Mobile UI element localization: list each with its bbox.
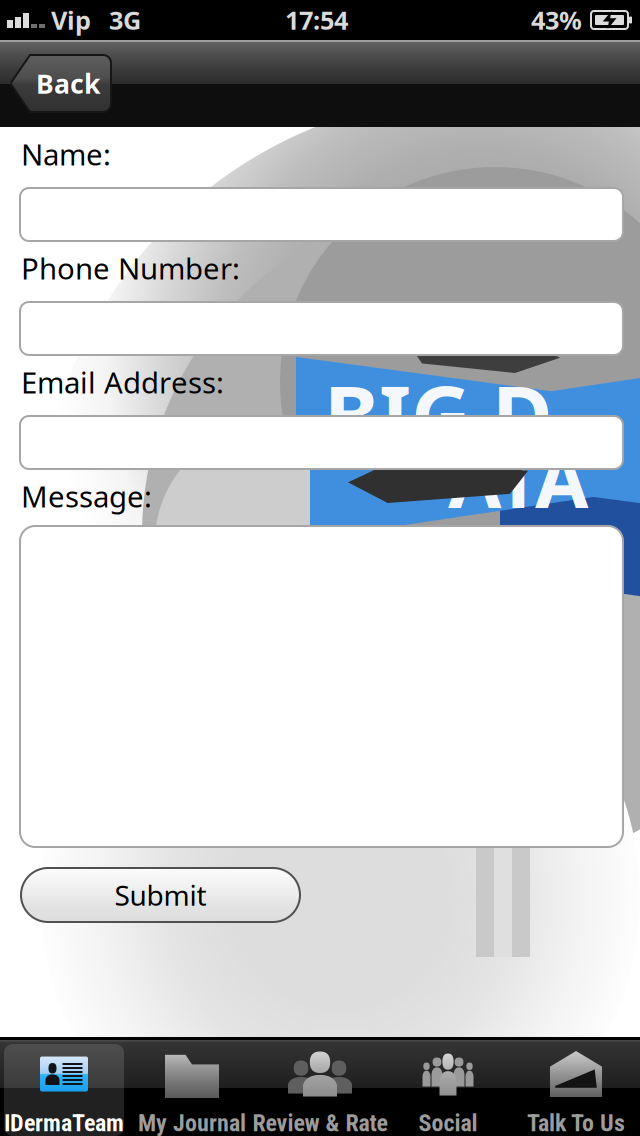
button[interactable]: Social: [384, 1037, 512, 1136]
button[interactable]: Back: [10, 55, 111, 112]
staticText: BIG D: [324, 359, 553, 469]
button[interactable]: Review & Rate: [256, 1037, 384, 1136]
staticText: IDermaTeam: [4, 1109, 124, 1136]
staticText: Submit: [114, 876, 206, 914]
staticText: My Journal: [138, 1109, 246, 1136]
button[interactable]: My Journal: [128, 1037, 256, 1136]
button[interactable]: Submit: [21, 868, 300, 922]
staticText: Talk To Us: [527, 1109, 625, 1136]
staticText: ATA: [448, 427, 589, 530]
button[interactable]: IDermaTeam: [0, 1037, 128, 1136]
staticText: 3G: [109, 3, 141, 37]
staticText: 17:54: [285, 3, 348, 37]
staticText: Name:: [21, 134, 111, 173]
staticText: Review & Rate: [252, 1109, 387, 1136]
staticText: Message:: [21, 476, 152, 515]
staticText: Vip: [51, 3, 91, 37]
staticText: Social: [418, 1109, 477, 1136]
button[interactable]: Talk To Us: [512, 1037, 640, 1136]
staticText: Email Address:: [21, 362, 224, 401]
staticText: D: [570, 523, 621, 615]
staticText: Phone Number:: [21, 248, 240, 287]
staticText: Back: [36, 66, 101, 101]
staticText: 43%: [531, 3, 582, 37]
